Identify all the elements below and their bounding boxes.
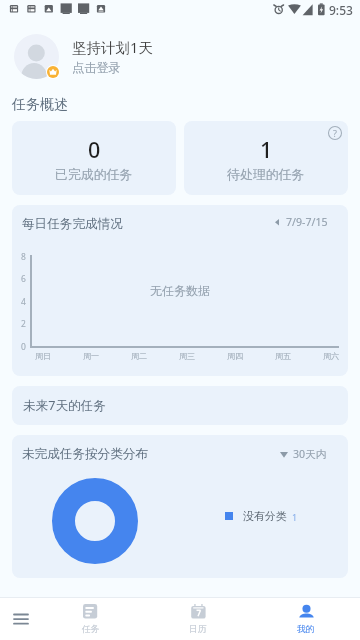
- staticText: 1: [260, 135, 273, 164]
- button[interactable]: 我的: [252, 597, 360, 640]
- staticText: 周二: [131, 351, 148, 361]
- staticText: 已完成的任务: [55, 167, 133, 183]
- staticText: 8: [21, 251, 26, 263]
- button[interactable]: 帮助: [328, 126, 342, 140]
- staticText: 2: [21, 318, 26, 330]
- staticText: 30天内: [293, 447, 327, 461]
- staticText: 周四: [227, 351, 244, 361]
- button[interactable]: 1: [184, 121, 348, 195]
- staticText: 周一: [83, 351, 100, 361]
- staticText: 待处理的任务: [227, 167, 305, 183]
- staticText: 任务: [82, 624, 100, 635]
- staticText: 9:53: [329, 2, 353, 18]
- staticText: 我的: [297, 624, 315, 635]
- button[interactable]: 菜单: [0, 597, 37, 640]
- staticText: 6: [21, 273, 26, 285]
- button[interactable]: 任务: [37, 597, 144, 640]
- staticText: 没有分类: [243, 510, 287, 524]
- button[interactable]: 没有分类: [225, 510, 298, 524]
- staticText: 0: [88, 135, 101, 164]
- staticText: 7/9-7/15: [286, 215, 328, 229]
- staticText: 0: [21, 341, 26, 353]
- staticText: 每日任务完成情况: [22, 216, 123, 232]
- staticText: 1: [292, 511, 298, 523]
- staticText: 未完成任务按分类分布: [22, 446, 148, 462]
- staticText: ?: [333, 127, 337, 139]
- staticText: 4: [21, 296, 26, 308]
- staticText: 周日: [35, 351, 52, 361]
- button[interactable]: 7/9-7/15: [275, 215, 328, 229]
- staticText: 坚持计划1天: [72, 37, 153, 57]
- staticText: 周五: [275, 351, 292, 361]
- staticText: 无任务数据: [150, 283, 210, 298]
- button[interactable]: 坚持计划1天: [0, 34, 360, 79]
- staticText: 周六: [323, 351, 340, 361]
- button[interactable]: 30天内: [280, 447, 327, 461]
- staticText: 未来7天的任务: [23, 397, 106, 414]
- button[interactable]: 日历: [144, 597, 252, 640]
- button[interactable]: 0: [12, 121, 176, 195]
- staticText: 任务概述: [12, 96, 68, 114]
- staticText: 日历: [189, 624, 207, 635]
- staticText: 点击登录: [72, 60, 121, 75]
- button[interactable]: 未来7天的任务: [12, 386, 348, 425]
- staticText: 周三: [179, 351, 196, 361]
